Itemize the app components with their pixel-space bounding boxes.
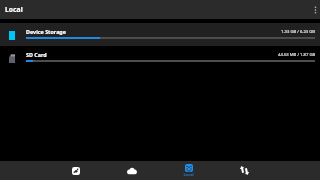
- button[interactable]: Transfer: [216, 161, 272, 180]
- button[interactable]: Local: [160, 161, 216, 180]
- staticText: Local: [5, 5, 23, 14]
- staticText: 1.33 GB / 6.23 GB: [281, 29, 316, 35]
- staticText: 44.63 MB / 1.87 GB: [278, 52, 316, 58]
- button[interactable]: SD Card: [0, 46, 320, 69]
- button[interactable]: Network: [48, 161, 104, 180]
- staticText: Device Storage: [26, 28, 66, 35]
- staticText: Local: [183, 172, 194, 178]
- button[interactable]: Device Storage: [0, 23, 320, 46]
- staticText: SD Card: [26, 51, 47, 58]
- button[interactable]: Cloud: [104, 161, 160, 180]
- button[interactable]: More options: [304, 0, 320, 19]
